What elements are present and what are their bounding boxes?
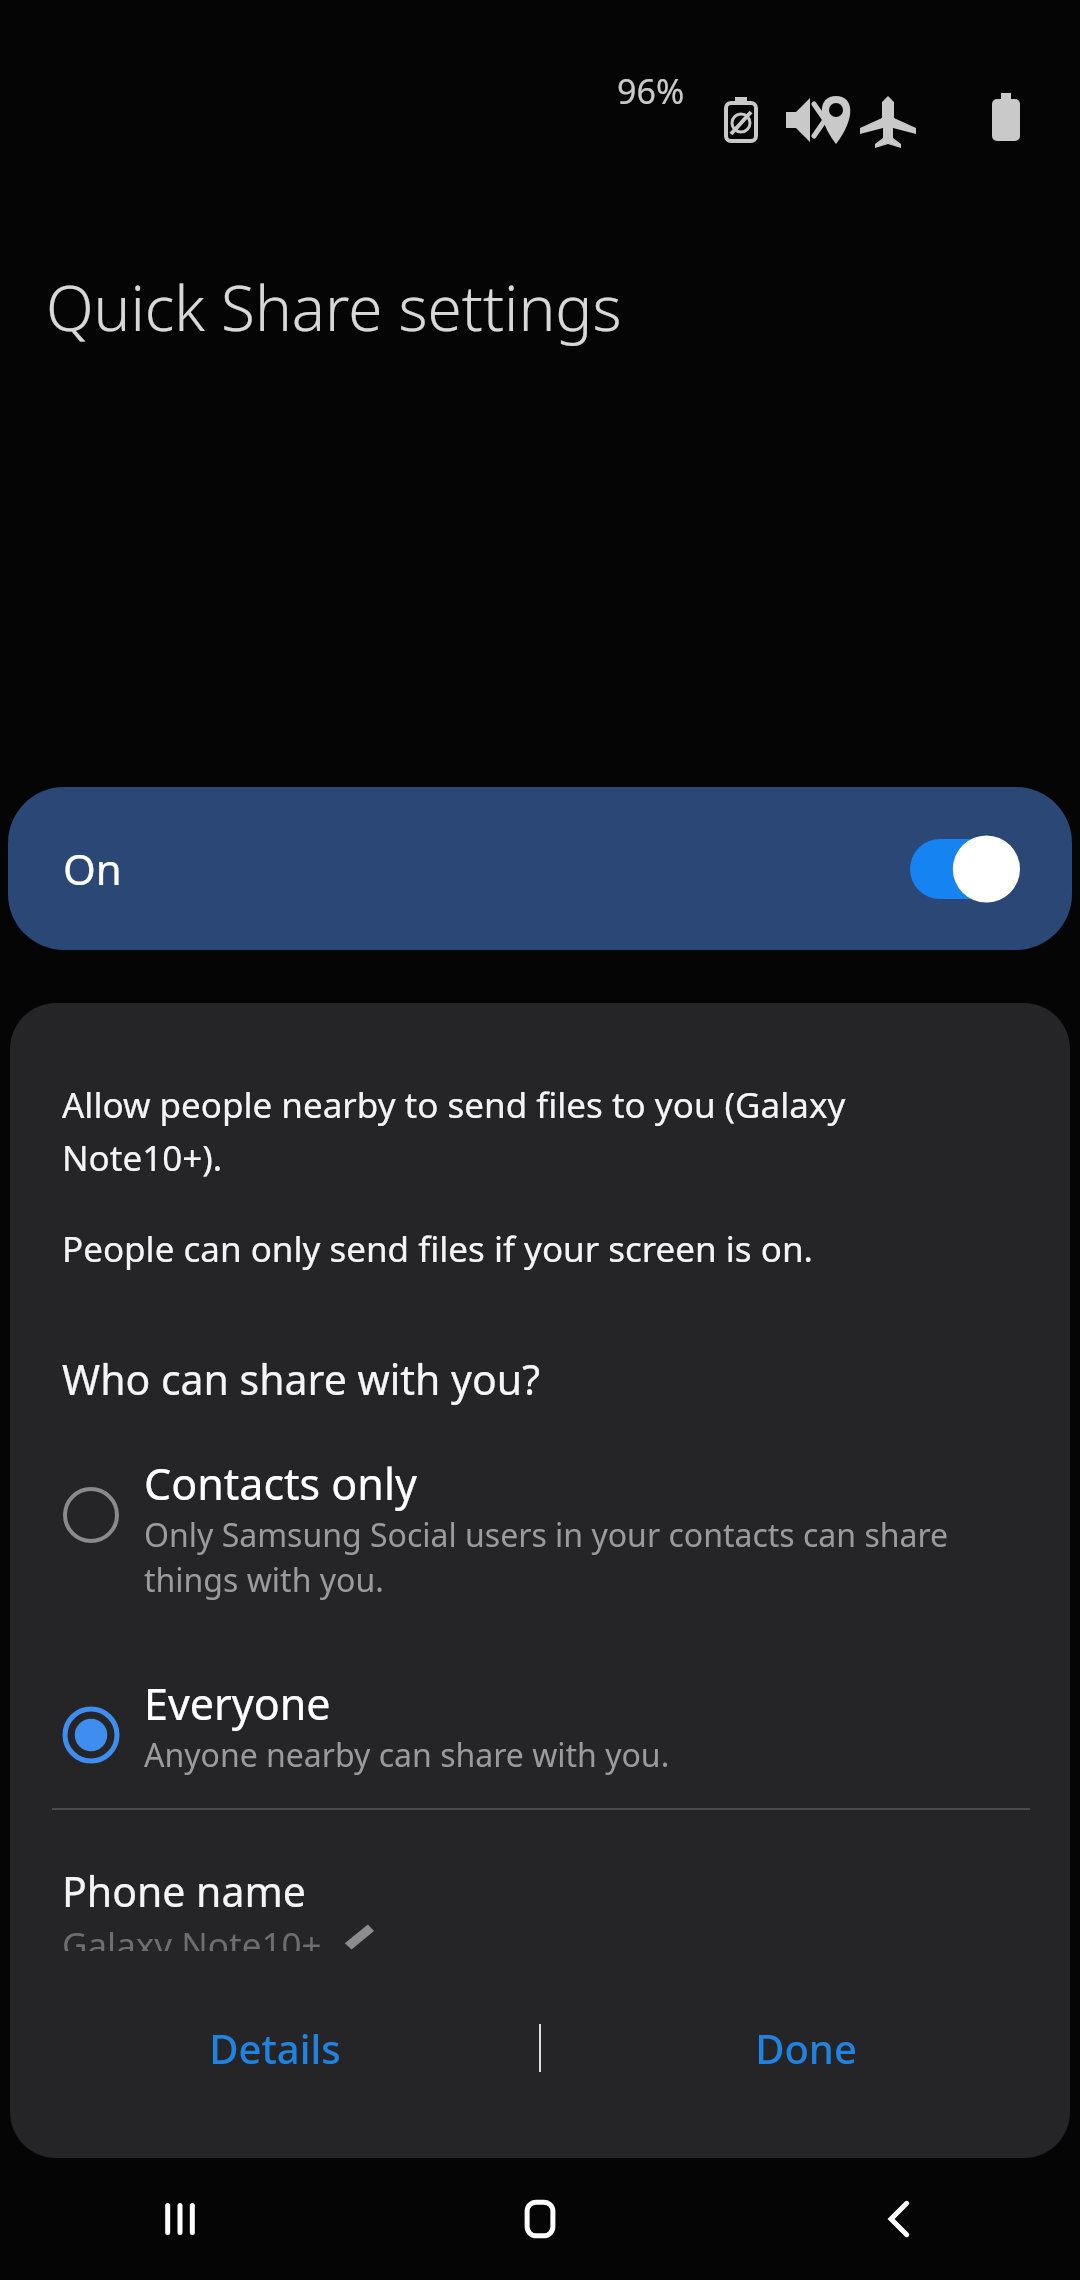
staticText: Everyone <box>144 1674 331 1733</box>
staticText: Anyone nearby can share with you. <box>144 1733 670 1777</box>
button[interactable]: Done <box>541 1938 1070 2158</box>
staticText: Who can share with you? <box>62 1351 540 1407</box>
staticText: On <box>63 840 122 897</box>
staticText: Contacts only <box>144 1454 417 1513</box>
button[interactable]: Details <box>10 1938 539 2158</box>
button[interactable]: On <box>8 787 1072 950</box>
staticText: Galaxy Note10+ <box>62 1921 322 1951</box>
button[interactable]: Contacts only <box>10 1448 1070 1608</box>
button[interactable]: Recents <box>0 2158 360 2280</box>
staticText: Quick Share settings <box>46 265 622 349</box>
staticText: Details <box>209 2021 341 2075</box>
button[interactable]: Everyone <box>10 1668 1070 1783</box>
button[interactable]: Back <box>720 2158 1080 2280</box>
staticText: 96% <box>617 68 685 114</box>
staticText: People can only send files if your scree… <box>62 1225 1022 1273</box>
button[interactable]: Home <box>360 2158 720 2280</box>
button[interactable]: Quick Share on <box>910 839 1014 899</box>
staticText: Only Samsung Social users in your contac… <box>144 1513 949 1602</box>
staticText: Phone name <box>62 1863 306 1919</box>
staticText: Allow people nearby to send files to you… <box>62 1081 1002 1181</box>
staticText: Done <box>755 2021 857 2075</box>
